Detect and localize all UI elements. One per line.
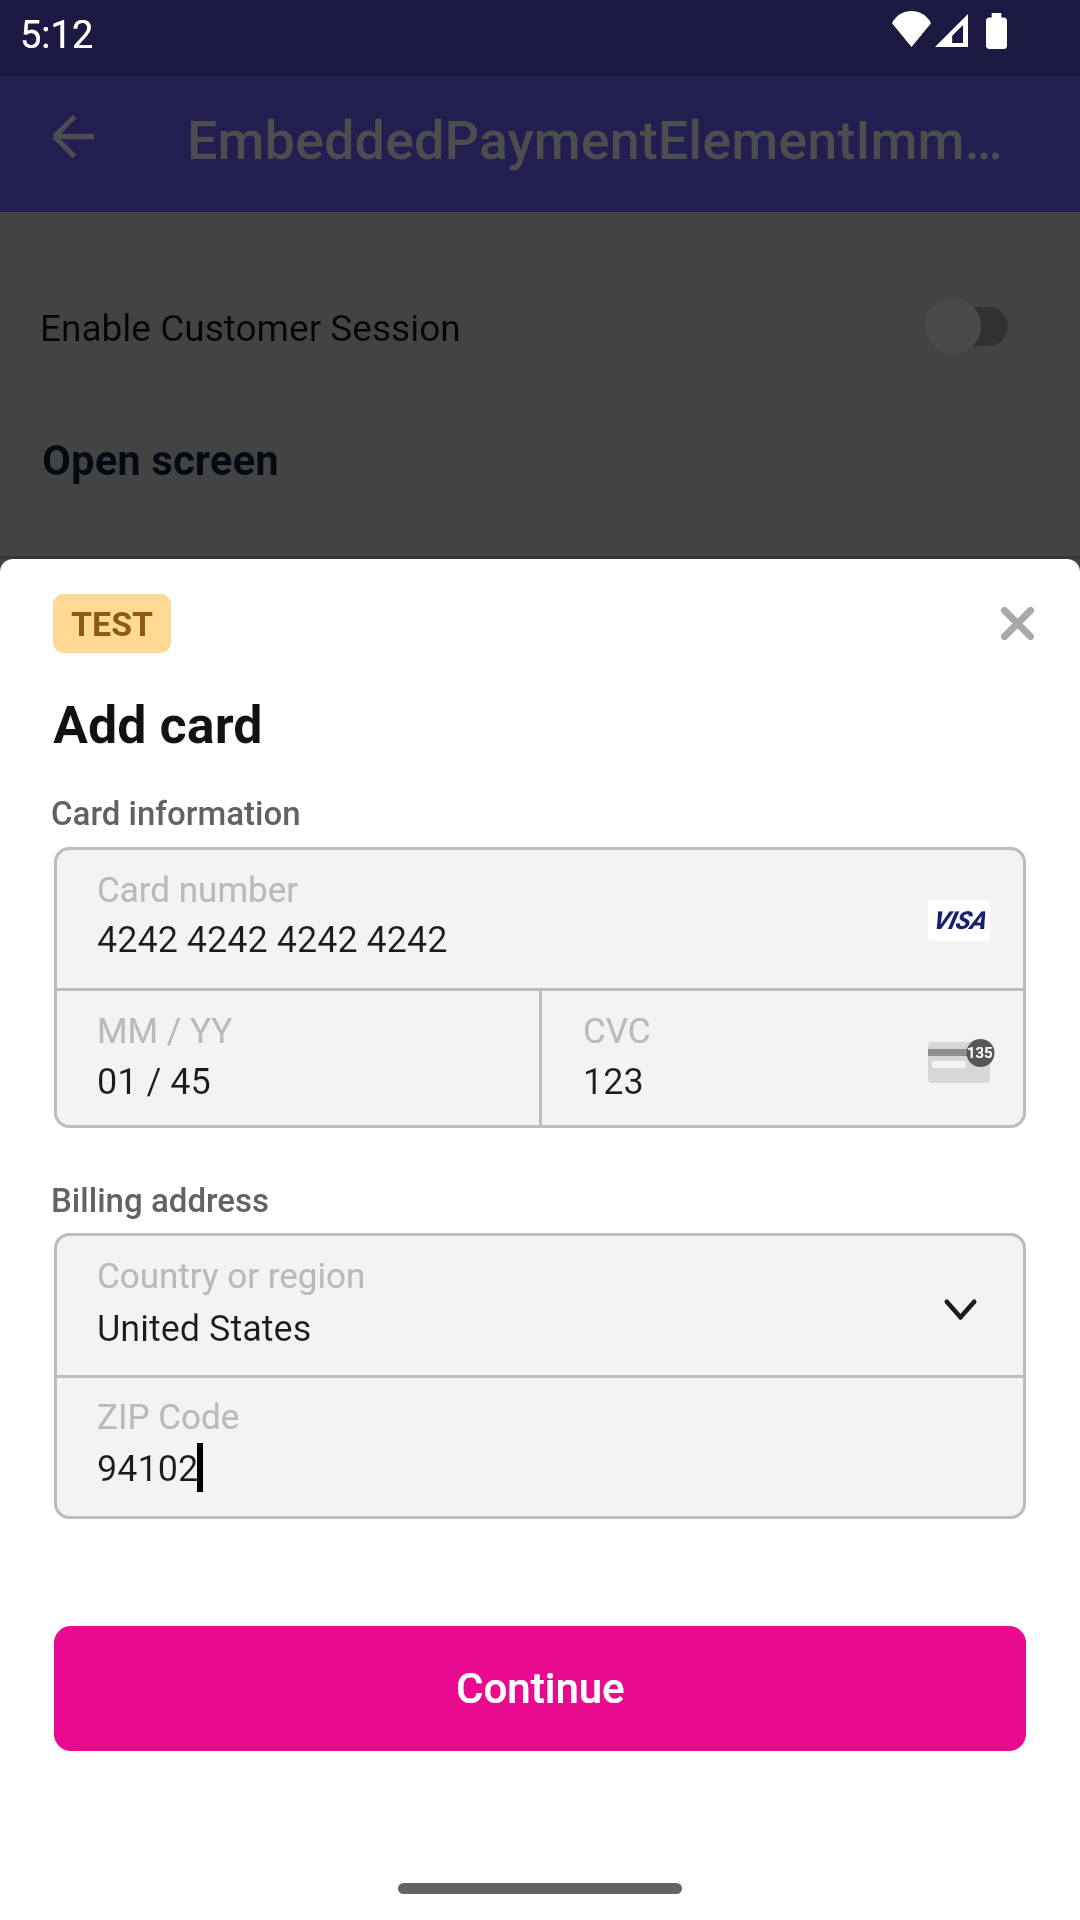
staticText: MM / YY	[97, 1011, 233, 1052]
button[interactable]: Close	[969, 575, 1065, 671]
staticText: 01 / 45	[97, 1061, 211, 1103]
staticText: Card number	[97, 870, 299, 911]
staticText: Open screen	[42, 436, 279, 485]
staticText: 5:12	[20, 13, 94, 58]
staticText: Continue	[456, 1664, 625, 1713]
staticText: Country or region	[97, 1256, 366, 1297]
staticText: Add card	[53, 695, 263, 756]
button[interactable]	[54, 1233, 1026, 1376]
button[interactable]	[541, 991, 1026, 1128]
staticText: ZIP Code	[97, 1397, 240, 1438]
button[interactable]	[54, 991, 539, 1128]
button[interactable]: TEST	[53, 594, 171, 653]
staticText: VISA	[932, 906, 986, 935]
staticText: United States	[97, 1308, 312, 1350]
staticText: Enable Customer Session	[40, 307, 461, 350]
button[interactable]	[0, 248, 1080, 406]
staticText: Card information	[51, 794, 301, 833]
staticText: TEST	[71, 604, 154, 644]
staticText: 4242 4242 4242 4242	[97, 919, 448, 961]
button[interactable]: Continue	[54, 1626, 1026, 1751]
button[interactable]	[0, 418, 1080, 510]
staticText: Billing address	[51, 1181, 270, 1220]
button[interactable]	[54, 1378, 1026, 1519]
staticText: 123	[583, 1061, 644, 1103]
button[interactable]	[54, 847, 1026, 989]
button[interactable]: Back	[25, 88, 121, 184]
staticText: 94102	[97, 1448, 199, 1490]
staticText: 135	[967, 1044, 993, 1062]
staticText: CVC	[583, 1011, 651, 1052]
staticText: EmbeddedPaymentElementImm…	[187, 109, 1003, 172]
